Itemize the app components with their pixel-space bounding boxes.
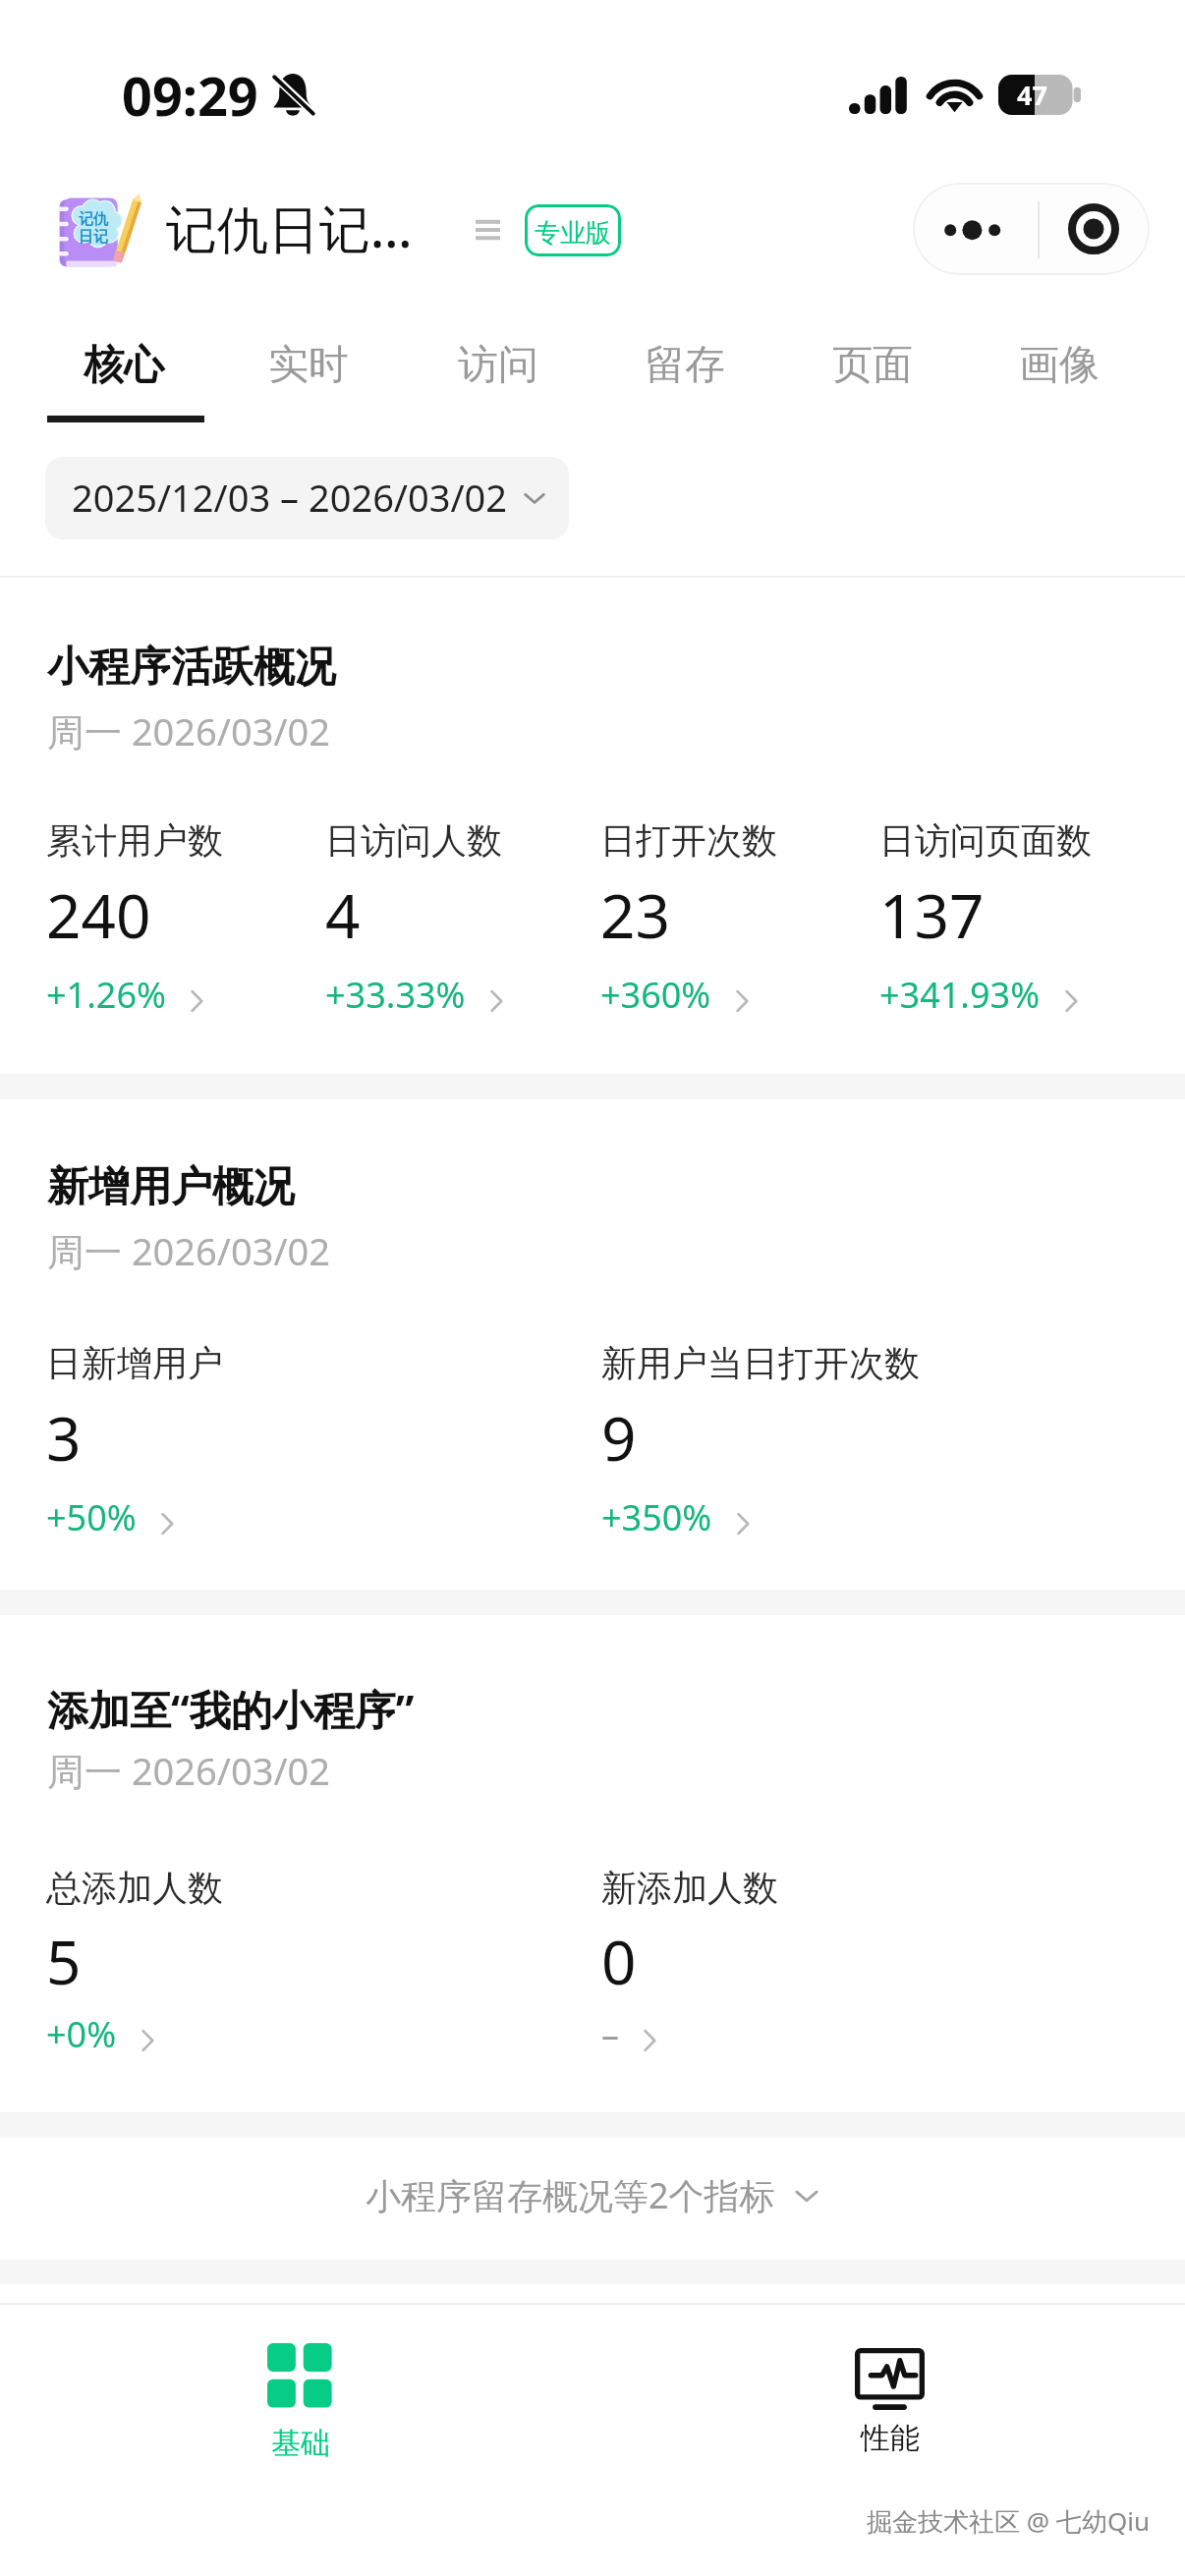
- staticText: 日记: [79, 228, 108, 247]
- staticText: 2025/12/03 – 2026/03/02: [72, 472, 508, 523]
- button[interactable]: Close mini program: [1038, 183, 1150, 275]
- staticText: 3: [46, 1396, 82, 1479]
- button[interactable]: +33.33%: [325, 971, 509, 1019]
- staticText: 周一 2026/03/02: [47, 1225, 331, 1276]
- staticText: 0: [601, 1920, 637, 2002]
- staticText: 留存: [645, 340, 725, 391]
- staticText: 周一 2026/03/02: [47, 1745, 331, 1796]
- button[interactable]: 实时: [230, 324, 387, 407]
- button[interactable]: 留存: [606, 324, 763, 407]
- staticText: 日访问人数: [325, 818, 502, 863]
- button[interactable]: 页面: [794, 324, 951, 407]
- staticText: +0%: [46, 2010, 117, 2058]
- staticText: 240: [46, 873, 151, 956]
- staticText: 性能: [861, 2420, 920, 2457]
- button[interactable]: +341.93%: [879, 971, 1084, 1019]
- button[interactable]: 专业版: [525, 204, 621, 256]
- staticText: +350%: [601, 1493, 712, 1541]
- button[interactable]: 性能: [593, 2305, 1185, 2506]
- staticText: 新增用户概况: [47, 1161, 295, 1213]
- staticText: 记仇: [79, 210, 108, 229]
- staticText: 小程序活跃概况: [47, 642, 336, 694]
- staticText: 09:29: [122, 59, 258, 132]
- button[interactable]: –: [601, 2010, 662, 2058]
- staticText: 页面: [832, 340, 913, 391]
- button[interactable]: More options: [913, 183, 1038, 275]
- staticText: +33.33%: [325, 971, 466, 1019]
- staticText: 总添加人数: [46, 1866, 223, 1910]
- button[interactable]: +0%: [46, 2010, 160, 2058]
- button[interactable]: [47, 187, 421, 275]
- button[interactable]: +50%: [46, 1493, 180, 1541]
- staticText: +341.93%: [879, 971, 1041, 1019]
- staticText: 核心: [84, 340, 164, 391]
- staticText: 新添加人数: [601, 1866, 778, 1910]
- button[interactable]: 基础: [4, 2305, 596, 2506]
- staticText: 9: [601, 1396, 637, 1479]
- staticText: 专业版: [535, 217, 611, 250]
- staticText: 日打开次数: [600, 818, 777, 863]
- staticText: 掘金技术社区 @ 七幼Qiu: [867, 2503, 1150, 2539]
- staticText: 添加至“我的小程序”: [47, 1681, 415, 1737]
- staticText: 实时: [268, 340, 349, 391]
- staticText: 日访问页面数: [879, 818, 1092, 863]
- button[interactable]: 访问: [420, 324, 577, 407]
- staticText: 累计用户数: [46, 818, 223, 863]
- button[interactable]: 核心: [45, 324, 202, 407]
- staticText: 访问: [458, 340, 538, 391]
- staticText: 小程序留存概况等2个指标: [366, 2171, 775, 2219]
- staticText: –: [601, 2010, 619, 2058]
- staticText: 4: [325, 873, 361, 956]
- staticText: 5: [46, 1920, 82, 2002]
- staticText: 周一 2026/03/02: [47, 705, 331, 756]
- button[interactable]: Menu: [462, 204, 514, 255]
- staticText: 137: [879, 873, 985, 956]
- staticText: 47: [1017, 77, 1047, 113]
- button[interactable]: +360%: [600, 971, 755, 1019]
- staticText: 记仇日记...: [166, 193, 413, 262]
- button[interactable]: +1.26%: [46, 971, 209, 1019]
- staticText: 基础: [271, 2425, 330, 2462]
- staticText: +50%: [46, 1493, 137, 1541]
- staticText: +1.26%: [46, 971, 166, 1019]
- button[interactable]: 画像: [981, 324, 1138, 407]
- staticText: 新用户当日打开次数: [601, 1341, 920, 1385]
- staticText: 日新增用户: [46, 1341, 223, 1385]
- button[interactable]: +350%: [601, 1493, 756, 1541]
- staticText: 画像: [1019, 340, 1100, 391]
- button[interactable]: 2025/12/03 – 2026/03/02: [45, 457, 569, 539]
- staticText: +360%: [600, 971, 711, 1019]
- staticText: 23: [600, 873, 670, 956]
- button[interactable]: 小程序留存概况等2个指标: [0, 2134, 1185, 2256]
